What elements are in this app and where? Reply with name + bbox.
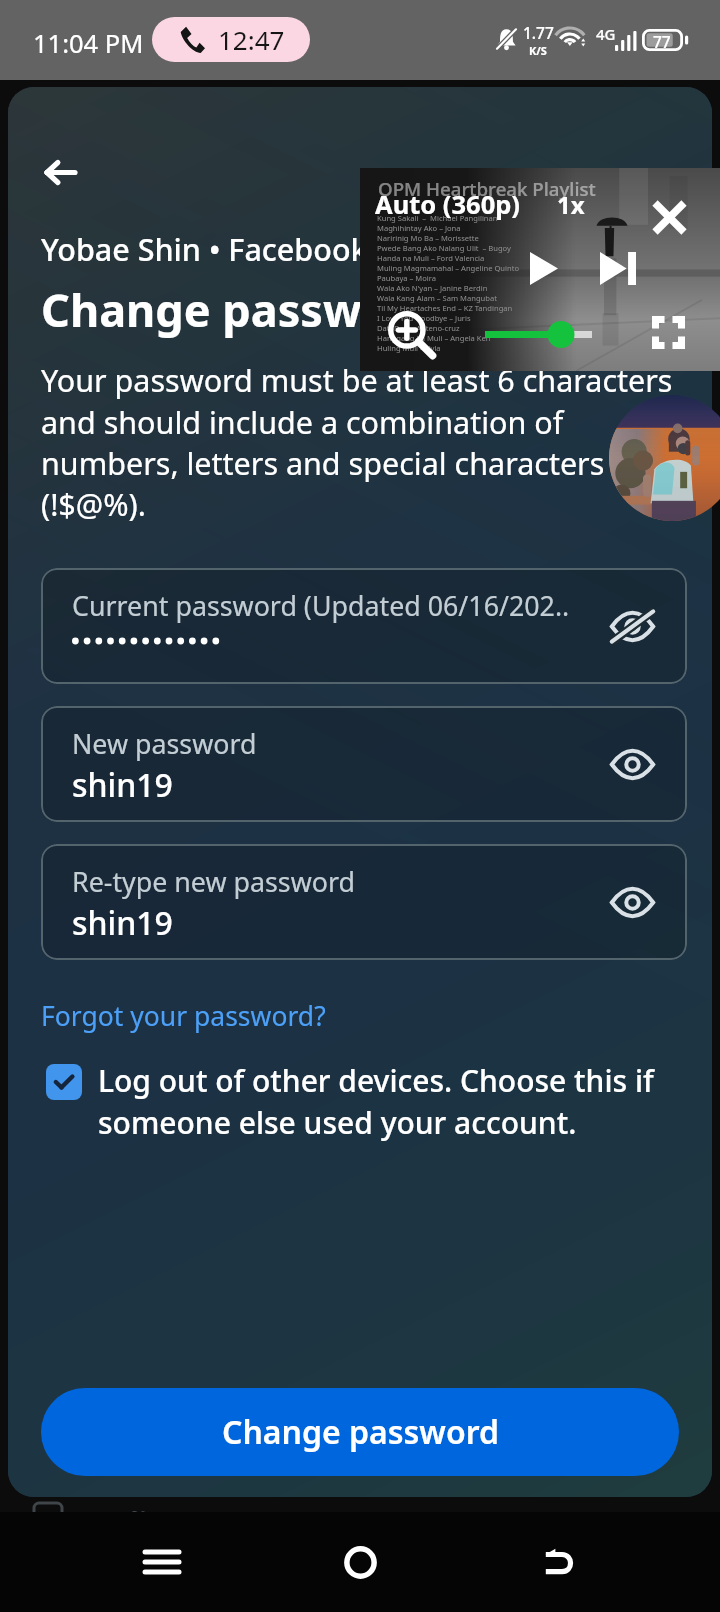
- staticText: New password: [72, 725, 257, 762]
- button[interactable]: Recent apps: [125, 1525, 199, 1599]
- staticText: OPM Heartbreak Playlist: [378, 176, 596, 201]
- staticText: Change password: [41, 279, 438, 340]
- staticText: Naririnig Mo Ba – Morissette: [377, 233, 479, 243]
- staticText: K/S: [529, 43, 547, 58]
- staticText: 77: [653, 31, 671, 52]
- staticText: Wala Kang Alam – Sam Mangubat: [377, 293, 497, 303]
- staticText: 12:47: [218, 22, 285, 57]
- staticText: Kung Sakali – Michael Pangilinan: [377, 213, 498, 223]
- staticText: Maghihintay Ako – Jona: [377, 223, 461, 233]
- staticText: 11:04 PM: [33, 26, 144, 61]
- button[interactable]: New password: [41, 706, 687, 822]
- button[interactable]: Fullscreen: [644, 308, 692, 356]
- staticText: Dati-Dati – Anteno-cruz: [377, 323, 460, 333]
- button[interactable]: Back: [27, 139, 93, 205]
- staticText: Yobae Shin • Facebook: [41, 228, 368, 270]
- staticText: Current password (Updated 06/16/202..: [72, 587, 570, 624]
- staticText: 1.77: [523, 22, 554, 43]
- staticText: Pwede Bang Ako Nalang Ulit – Bugoy: [377, 243, 511, 253]
- staticText: I Love You Goodbye – Juris: [377, 313, 471, 323]
- staticText: shin19: [72, 763, 173, 807]
- button[interactable]: Forgot your password?: [41, 998, 326, 1034]
- staticText: Wala Ako N'yan – Janine Berdin: [377, 283, 488, 293]
- staticText: Change password: [222, 1410, 499, 1454]
- button[interactable]: Hide password: [603, 873, 661, 931]
- button[interactable]: Re-type new password: [41, 844, 687, 960]
- button[interactable]: Next: [590, 240, 646, 296]
- staticText: Til My Heartaches End – KZ Tandingan: [377, 303, 513, 313]
- staticText: Forgot your password?: [41, 998, 326, 1034]
- staticText: 1x: [557, 188, 585, 221]
- staticText: Re-type new password: [72, 863, 355, 900]
- staticText: shin19: [72, 901, 173, 945]
- button[interactable]: Change password: [41, 1388, 679, 1476]
- staticText: Muling Magmamahal – Angeline Quinto: [377, 263, 520, 273]
- staticText: Paubaya – Moira: [377, 273, 437, 283]
- staticText: 4G: [596, 24, 616, 44]
- button[interactable]: Log out of other devices. Choose this if…: [46, 1060, 677, 1142]
- button[interactable]: Ongoing call: [152, 17, 310, 62]
- button[interactable]: Close player: [637, 185, 701, 249]
- button[interactable]: Play: [516, 240, 572, 296]
- button[interactable]: Current password (Updated 06/16/202..: [41, 568, 687, 684]
- staticText: Handa na Muli – Ford Valencia: [377, 253, 485, 263]
- staticText: Log out of other devices. Choose this if…: [98, 1060, 654, 1142]
- button[interactable]: Home: [323, 1525, 397, 1599]
- button[interactable]: Zoom: [387, 311, 435, 359]
- staticText: Huling Muli – Kyla: [377, 343, 441, 353]
- staticText: Auto (360p): [375, 187, 521, 222]
- button[interactable]: Show password: [603, 597, 661, 655]
- staticText: Media: [78, 1503, 164, 1541]
- staticText: Hanggang Sa Muli – Angela Ken: [377, 333, 491, 343]
- staticText: Your password must be at least 6 charact…: [41, 359, 673, 525]
- button[interactable]: Back: [522, 1525, 596, 1599]
- button[interactable]: Hide password: [603, 735, 661, 793]
